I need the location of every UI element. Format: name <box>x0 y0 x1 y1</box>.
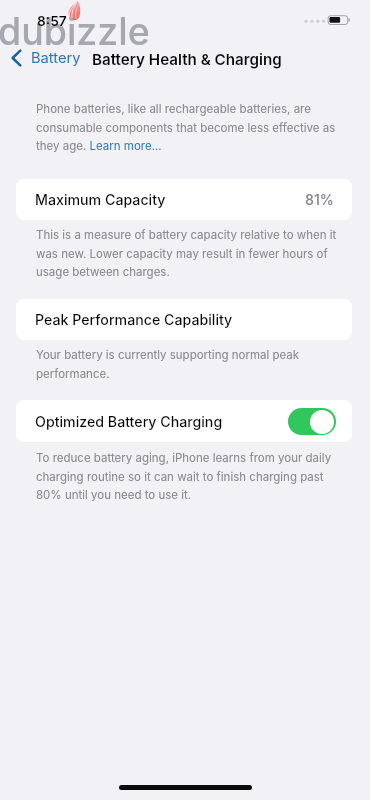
staticText: Peak Performance Capability <box>35 311 233 328</box>
button[interactable]: Maximum Capacity <box>16 179 352 220</box>
staticText: Battery <box>31 49 81 67</box>
staticText: Battery Health & Charging <box>92 50 282 68</box>
staticText: Optimized Battery Charging <box>35 413 223 430</box>
staticText: Maximum Capacity <box>35 191 166 208</box>
staticText: 8:57 <box>37 13 67 30</box>
staticText: 81% <box>305 191 334 208</box>
staticText: dubizzle <box>0 9 150 54</box>
button[interactable]: Battery <box>11 48 81 68</box>
staticText: This is a measure of battery capacity re… <box>36 228 338 279</box>
staticText: To reduce battery aging, iPhone learns f… <box>36 451 338 502</box>
button[interactable]: Optimized Battery Charging <box>16 400 352 442</box>
staticText: Phone batteries, like all rechargeable b… <box>36 102 340 153</box>
button[interactable]: Optimized Battery Charging toggle, on <box>288 408 336 435</box>
button[interactable]: Peak Performance Capability <box>16 299 352 340</box>
staticText: Your battery is currently supporting nor… <box>36 348 338 381</box>
